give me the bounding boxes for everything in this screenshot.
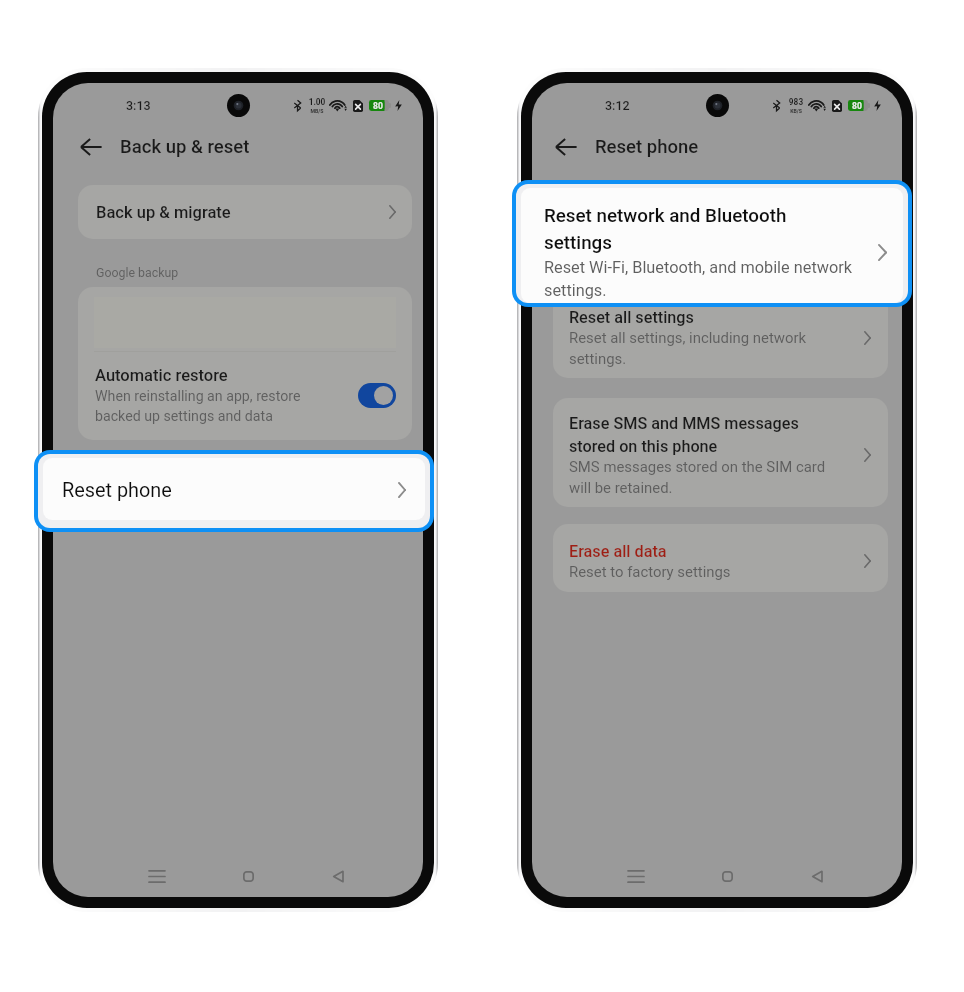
button[interactable]: Erase SMS and MMS messages stored on thi… [553, 398, 888, 507]
button[interactable]: Reset all settings [553, 293, 888, 378]
staticText: Reset network and Bluetooth settings [569, 196, 778, 238]
staticText: Erase all data [569, 542, 667, 561]
staticText: Erase SMS and MMS messages stored on thi… [569, 414, 799, 456]
staticText: SMS messages stored on the SIM card will… [569, 458, 826, 496]
staticText: 3:13 [126, 98, 151, 113]
staticText: Reset to factory settings [569, 563, 731, 580]
button[interactable]: Reset phone [43, 458, 425, 520]
staticText: 3:12 [605, 98, 630, 113]
button[interactable]: Back up & migrate [78, 185, 412, 239]
staticText: Reset network and Bluetooth settings [544, 205, 787, 254]
button[interactable]: Automatic restore [78, 352, 412, 440]
button[interactable]: Back [80, 140, 102, 158]
button[interactable]: Recent apps [616, 856, 656, 896]
staticText: MB/S [308, 108, 326, 114]
staticText: When reinstalling an app, restore backed… [95, 388, 301, 424]
staticText: Back up & reset [120, 136, 250, 158]
staticText: Reset Wi-Fi, Bluetooth, and mobile netwo… [569, 240, 851, 278]
staticText: Reset phone [595, 136, 699, 158]
button[interactable]: Home [707, 856, 747, 896]
staticText: Automatic restore [95, 366, 228, 385]
staticText: Reset all settings [569, 308, 694, 327]
staticText: 1.00 [308, 97, 326, 107]
button[interactable]: Reset network and Bluetooth settings [521, 188, 903, 303]
staticText: 983 [787, 97, 805, 107]
staticText: Reset all settings, including network se… [569, 329, 807, 367]
button[interactable]: Home [228, 856, 268, 896]
staticText: 80 [852, 101, 862, 111]
staticText: Reset Wi-Fi, Bluetooth, and mobile netwo… [544, 258, 853, 300]
staticText: 80 [373, 101, 383, 111]
staticText: KB/S [787, 108, 805, 114]
button[interactable]: Recent apps [137, 856, 177, 896]
button[interactable]: Back [555, 140, 577, 158]
staticText: Reset phone [62, 479, 398, 502]
staticText: Back up & migrate [96, 203, 389, 222]
button[interactable]: Erase all data [553, 524, 888, 592]
staticText: Google backup [96, 266, 179, 280]
button[interactable]: Back [318, 856, 358, 896]
button[interactable]: Back [797, 856, 837, 896]
button[interactable]: Reset network and Bluetooth settings [553, 183, 888, 287]
